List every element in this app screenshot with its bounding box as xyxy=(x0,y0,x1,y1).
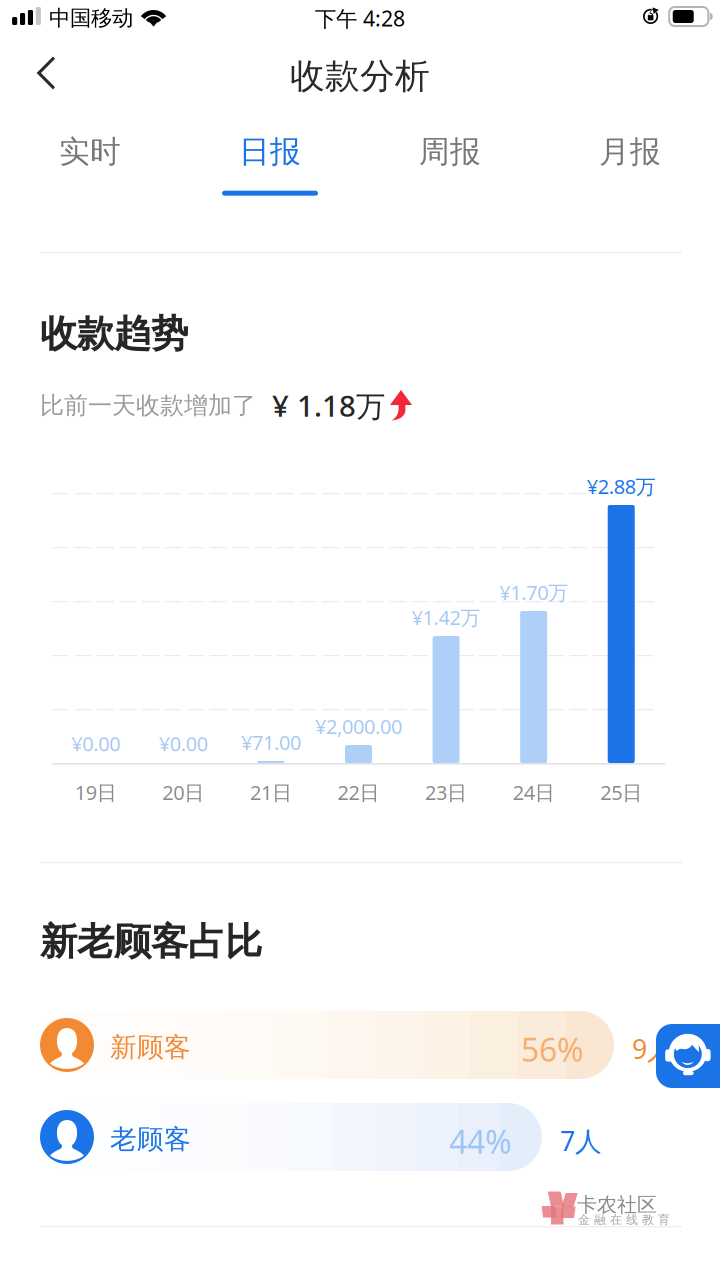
staticText: 22日 xyxy=(337,779,379,806)
staticText: 20日 xyxy=(162,779,204,806)
staticText: ¥71.00 xyxy=(241,729,301,756)
staticText: 7人 xyxy=(560,1123,602,1158)
staticText: 24日 xyxy=(513,779,555,806)
button[interactable]: 实时 xyxy=(0,118,180,200)
staticText: ¥0.00 xyxy=(71,730,120,757)
button[interactable]: 在线客服 xyxy=(656,1024,720,1088)
staticText: ¥1.70万 xyxy=(499,579,568,606)
staticText: 收款分析 xyxy=(290,55,430,98)
staticText: 老顾客 xyxy=(110,1123,191,1156)
staticText: ¥ 1.18万 xyxy=(272,386,385,425)
button[interactable]: 返回 xyxy=(8,39,84,107)
button[interactable]: 日报 xyxy=(180,118,360,200)
staticText: 新顾客 xyxy=(110,1031,191,1064)
staticText: 日报 xyxy=(239,133,301,171)
staticText: 新老顾客占比 xyxy=(40,919,262,965)
staticText: ¥1.42万 xyxy=(412,604,481,631)
staticText: 9人 xyxy=(632,1031,674,1066)
staticText: 收款趋势 xyxy=(40,311,188,357)
staticText: ¥0.00 xyxy=(159,730,208,757)
staticText: 实时 xyxy=(59,133,121,171)
staticText: 下午 4:28 xyxy=(315,4,405,32)
staticText: ¥2.88万 xyxy=(587,473,656,500)
staticText: 23日 xyxy=(425,779,467,806)
staticText: 比前一天收款增加了 xyxy=(40,391,256,420)
staticText: 56% xyxy=(521,1028,584,1070)
staticText: 19日 xyxy=(75,779,117,806)
staticText: 卡农社区 xyxy=(577,1192,657,1217)
staticText: 25日 xyxy=(600,779,642,806)
staticText: 月报 xyxy=(599,133,661,171)
staticText: 44% xyxy=(449,1120,512,1162)
staticText: ¥2,000.00 xyxy=(315,713,402,740)
staticText: 金 融 在 线 教 育 xyxy=(578,1212,670,1227)
button[interactable]: 月报 xyxy=(540,118,720,200)
staticText: 21日 xyxy=(250,779,292,806)
button[interactable]: 周报 xyxy=(360,118,540,200)
staticText: 中国移动 xyxy=(49,5,133,31)
staticText: 周报 xyxy=(419,133,481,171)
